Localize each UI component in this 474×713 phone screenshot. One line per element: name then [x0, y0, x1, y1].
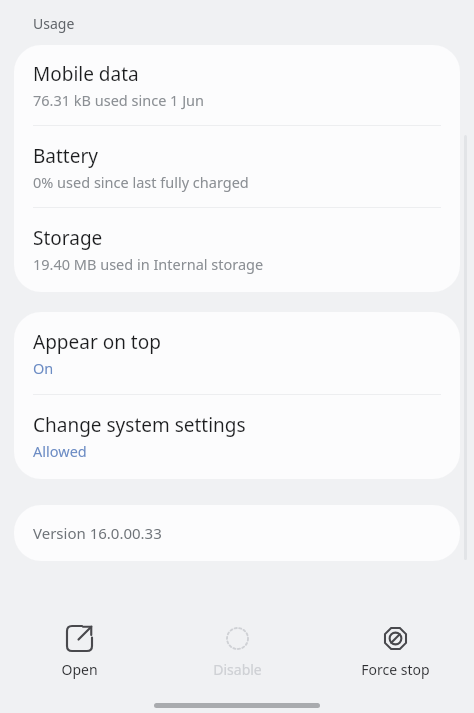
staticText: Version 16.0.00.33: [33, 523, 162, 543]
staticText: Usage: [33, 14, 75, 33]
button[interactable]: Battery: [14, 126, 460, 207]
staticText: Change system settings: [33, 412, 246, 438]
staticText: 76.31 kB used since 1 Jun: [33, 90, 205, 110]
button[interactable]: Appear on top: [14, 312, 460, 394]
button[interactable]: Disable: [158, 620, 316, 685]
staticText: Allowed: [33, 441, 87, 461]
staticText: Storage: [33, 225, 103, 251]
staticText: Open: [61, 660, 98, 679]
button[interactable]: Storage: [14, 208, 460, 292]
staticText: On: [33, 358, 54, 378]
button[interactable]: Force stop: [316, 620, 474, 685]
staticText: 19.40 MB used in Internal storage: [33, 254, 264, 274]
button[interactable]: Change system settings: [14, 395, 460, 479]
staticText: Disable: [213, 660, 262, 679]
staticText: Appear on top: [33, 329, 161, 355]
staticText: Mobile data: [33, 61, 139, 87]
button[interactable]: Open: [0, 620, 158, 685]
staticText: Battery: [33, 143, 98, 169]
staticText: Force stop: [361, 660, 430, 679]
button[interactable]: Mobile data: [14, 45, 460, 125]
staticText: 0% used since last fully charged: [33, 172, 249, 192]
